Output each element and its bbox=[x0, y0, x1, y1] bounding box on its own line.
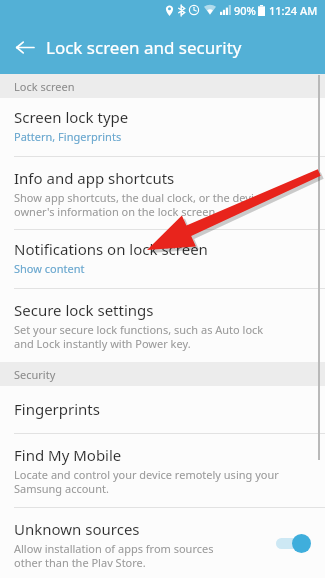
button[interactable]: Info and app shortcuts bbox=[0, 157, 325, 229]
staticText: Unknown sources bbox=[14, 519, 140, 539]
staticText: Lock screen bbox=[14, 79, 75, 94]
staticText: Security bbox=[14, 367, 56, 382]
staticText: 11:24 AM bbox=[269, 3, 318, 18]
staticText: Secure lock settings bbox=[14, 300, 154, 320]
button[interactable]: Find My Mobile bbox=[0, 434, 325, 507]
staticText: Fingerprints bbox=[14, 399, 100, 419]
button[interactable]: Unknown sources toggle bbox=[273, 532, 313, 554]
staticText: Show content bbox=[14, 261, 85, 276]
staticText: Show app shortcuts, the dual clock, or t… bbox=[14, 190, 266, 219]
staticText: Allow installation of apps from sources … bbox=[14, 541, 214, 567]
staticText: Lock screen and security bbox=[46, 36, 242, 59]
staticText: Info and app shortcuts bbox=[14, 168, 175, 188]
staticText: Find My Mobile bbox=[14, 445, 122, 465]
button[interactable]: Secure lock settings bbox=[0, 289, 325, 362]
button[interactable]: Screen lock type bbox=[0, 98, 325, 156]
button[interactable]: Notifications on lock screen bbox=[0, 230, 325, 288]
staticText: Locate and control your device remotely … bbox=[14, 467, 279, 496]
button[interactable]: Navigate up bbox=[8, 30, 42, 64]
staticText: Set your secure lock functions, such as … bbox=[14, 322, 264, 351]
button[interactable]: Fingerprints bbox=[0, 386, 325, 433]
staticText: Pattern, Fingerprints bbox=[14, 129, 122, 144]
staticText: Screen lock type bbox=[14, 107, 129, 127]
button[interactable]: Unknown sources bbox=[0, 508, 325, 578]
staticText: 90% bbox=[234, 3, 256, 18]
staticText: Notifications on lock screen bbox=[14, 239, 208, 259]
